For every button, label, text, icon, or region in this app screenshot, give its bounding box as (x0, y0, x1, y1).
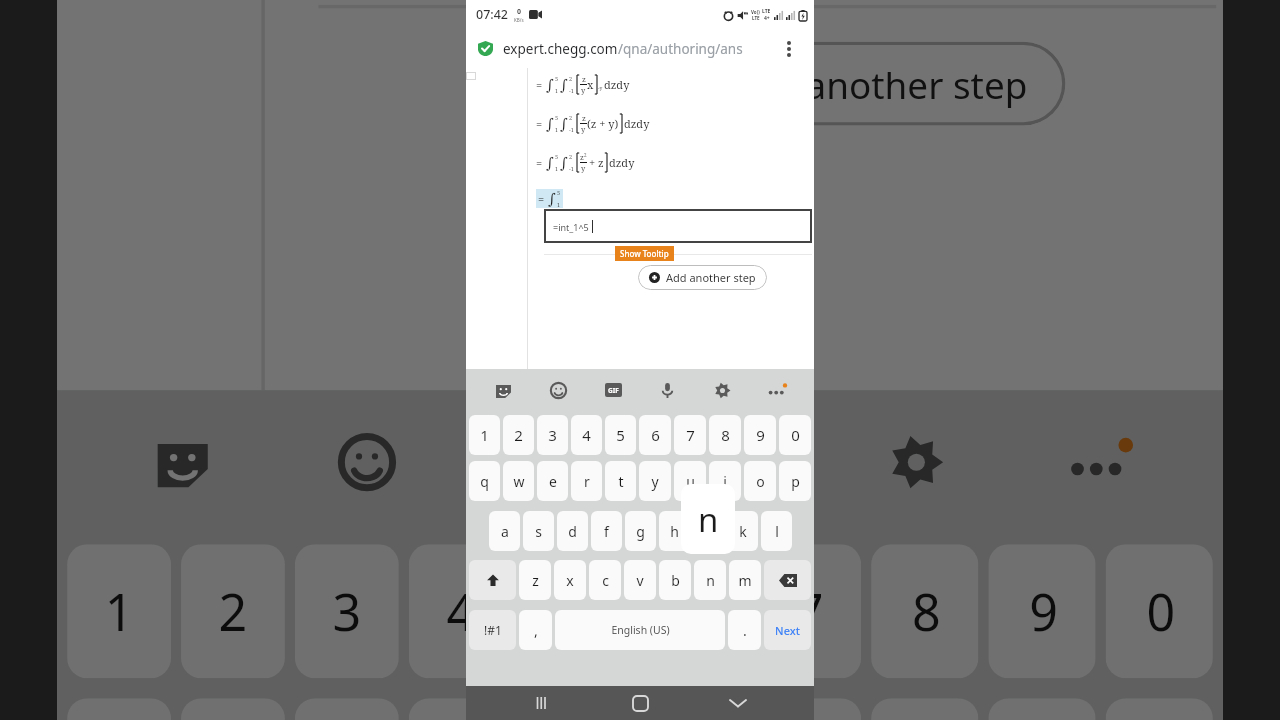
button[interactable]: i (871, 698, 978, 720)
button[interactable]: s (523, 511, 554, 551)
staticText: . (743, 621, 747, 640)
button[interactable]: 2 (181, 544, 285, 678)
button[interactable]: Voice input (673, 403, 787, 517)
button[interactable]: Voice input (650, 373, 684, 407)
button[interactable]: f (591, 511, 622, 551)
button[interactable]: Add another step (638, 265, 767, 290)
button[interactable]: More options (776, 36, 802, 62)
button[interactable]: 3 (295, 544, 399, 678)
button[interactable]: q (469, 461, 500, 501)
button[interactable]: h (659, 511, 690, 551)
button[interactable]: g (625, 511, 656, 551)
button[interactable]: Emoji (541, 373, 575, 407)
button[interactable]: b (659, 560, 691, 600)
button[interactable]: z (519, 560, 551, 600)
button[interactable]: e (537, 461, 568, 501)
button[interactable]: 7 (674, 415, 706, 455)
button[interactable]: More (1042, 403, 1156, 517)
button[interactable]: 6 (639, 415, 671, 455)
button[interactable]: w (181, 698, 285, 720)
button[interactable]: u (674, 461, 706, 501)
button[interactable]: y (637, 698, 744, 720)
staticText: LTE (762, 8, 771, 15)
button[interactable]: n (694, 560, 726, 600)
staticText: 5 (557, 189, 561, 196)
button[interactable]: u (754, 698, 861, 720)
button[interactable]: Show Tooltip (573, 0, 737, 22)
button[interactable]: 3 (537, 415, 568, 455)
button[interactable]: t (523, 698, 627, 720)
button[interactable]: p (779, 461, 811, 501)
button[interactable]: Keyboard settings (858, 403, 972, 517)
button[interactable]: 0 (779, 415, 811, 455)
button[interactable]: Emoji (308, 403, 422, 517)
button[interactable]: More (760, 373, 794, 407)
button[interactable]: r (409, 698, 513, 720)
button[interactable]: Show Tooltip (620, 248, 669, 259)
button[interactable]: e (295, 698, 399, 720)
button[interactable]: 0 (1106, 544, 1213, 678)
button[interactable]: k (727, 511, 758, 551)
staticText: 1 (555, 126, 559, 133)
staticText: 8 (911, 578, 941, 645)
staticText: Show Tooltip (620, 248, 669, 259)
button[interactable]: Hide keyboard (716, 686, 760, 720)
button[interactable]: c (589, 560, 621, 600)
button[interactable]: 5 (605, 415, 636, 455)
button[interactable]: d (557, 511, 588, 551)
button[interactable]: !#1 (469, 610, 516, 650)
button[interactable]: Backspace (764, 560, 811, 600)
button[interactable]: GIF (596, 373, 630, 407)
button[interactable]: t (605, 461, 636, 501)
staticText: 5 (616, 425, 625, 445)
staticText: 2 (584, 152, 587, 158)
button[interactable]: 9 (988, 544, 1096, 678)
button[interactable]: 8 (709, 415, 741, 455)
button[interactable]: o (988, 698, 1096, 720)
button[interactable]: Recent apps (520, 686, 564, 720)
staticText: (z + y) (587, 116, 619, 131)
staticText: =int_1^5 (553, 221, 592, 233)
button[interactable]: p (1106, 698, 1213, 720)
button[interactable]: 8 (871, 544, 978, 678)
button[interactable]: 7 (754, 544, 861, 678)
button[interactable]: 1 (67, 544, 171, 678)
staticText: y (581, 163, 586, 173)
button[interactable]: j (693, 511, 724, 551)
button[interactable]: 5 (523, 544, 627, 678)
button[interactable]: Stickers (124, 403, 238, 517)
button[interactable]: . (728, 610, 761, 650)
button[interactable]: Home (618, 686, 662, 720)
staticText: 7 (794, 578, 824, 645)
button[interactable]: q (67, 698, 171, 720)
button[interactable]: v (624, 560, 656, 600)
button[interactable]: y (639, 461, 671, 501)
button[interactable]: a (489, 511, 520, 551)
button[interactable]: Shift (469, 560, 516, 600)
button[interactable]: Add another step (633, 42, 1065, 126)
button[interactable]: 1 (469, 415, 500, 455)
button[interactable]: , (519, 610, 552, 650)
staticText: dzdy (604, 77, 630, 92)
button[interactable]: 4 (409, 544, 513, 678)
button[interactable]: 2 (503, 415, 534, 455)
button[interactable]: Next (764, 610, 811, 650)
staticText: 6 (677, 578, 707, 645)
button[interactable]: GIF (493, 403, 606, 517)
button[interactable]: English (US) (555, 610, 725, 650)
button[interactable]: 4 (571, 415, 602, 455)
button[interactable]: Keyboard settings (705, 373, 739, 407)
staticText: = (536, 77, 543, 92)
button[interactable]: Stickers (486, 373, 520, 407)
button[interactable]: i (709, 461, 741, 501)
button[interactable]: m (729, 560, 761, 600)
button[interactable]: r (571, 461, 602, 501)
button[interactable]: w (503, 461, 534, 501)
button[interactable]: 9 (744, 415, 776, 455)
button[interactable]: o (744, 461, 776, 501)
button[interactable]: =int_1^5 (544, 209, 812, 243)
staticText: -1 (569, 126, 574, 133)
button[interactable]: l (761, 511, 792, 551)
button[interactable]: 6 (637, 544, 744, 678)
button[interactable]: x (554, 560, 586, 600)
